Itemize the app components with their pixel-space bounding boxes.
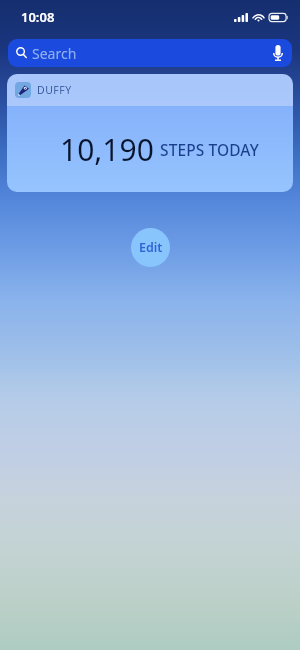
staticText: Edit [139, 239, 163, 256]
staticText: STEPS TODAY [160, 139, 259, 160]
staticText: Search [32, 44, 77, 63]
button[interactable]: DUFFY [7, 74, 293, 192]
button[interactable]: Search [8, 39, 292, 67]
staticText: 10,190 [60, 129, 154, 170]
staticText: DUFFY [37, 83, 72, 97]
staticText: 10:08 [21, 8, 55, 26]
button[interactable]: Edit [131, 228, 170, 267]
